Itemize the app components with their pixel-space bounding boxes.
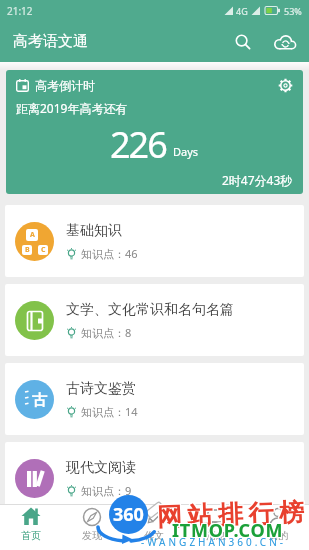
staticText: ITMOP.COM: [171, 519, 283, 544]
button[interactable]: [278, 78, 293, 93]
button[interactable]: 高考倒计时: [6, 70, 303, 194]
staticText: 消息: [206, 529, 226, 542]
button[interactable]: 文学、文化常识和名句名篇: [5, 284, 304, 356]
button[interactable]: 消息: [185, 505, 247, 550]
staticText: B: [25, 245, 30, 255]
staticText: 古诗文鉴赏: [66, 380, 136, 398]
button[interactable]: 现代文阅读: [5, 442, 304, 514]
staticText: 4G: [236, 5, 248, 17]
staticText: 21:12: [7, 4, 33, 18]
staticText: 2时47分43秒: [222, 172, 293, 188]
staticText: 知识点：8: [81, 325, 132, 340]
staticText: 360: [113, 502, 144, 527]
staticText: 距离2019年高考还有: [16, 100, 128, 116]
button[interactable]: 首页: [0, 505, 61, 550]
staticText: 我的: [268, 529, 288, 542]
staticText: C: [41, 245, 46, 255]
staticText: ITMOP.COM: [171, 518, 283, 543]
staticText: 226: [110, 120, 166, 169]
button[interactable]: 作文: [123, 505, 185, 550]
staticText: 发现: [82, 529, 102, 542]
staticText: 网站排行榜: [156, 497, 309, 534]
button[interactable]: [273, 33, 298, 51]
staticText: 网站排行榜: [156, 496, 309, 533]
staticText: 古: [32, 391, 47, 410]
staticText: ITMOP.COM: [173, 519, 285, 544]
staticText: ITMOP.COM: [172, 517, 284, 542]
staticText: 网站排行榜: [157, 495, 309, 532]
staticText: 网站排行榜: [157, 497, 309, 534]
staticText: 知识点：9: [81, 483, 132, 498]
staticText: Days: [173, 144, 199, 159]
staticText: 知识点：46: [81, 246, 138, 261]
staticText: 网站排行榜: [155, 496, 309, 533]
staticText: 高考语文通: [13, 32, 88, 51]
button[interactable]: 发现: [61, 505, 123, 550]
staticText: ITMOP.COM: [173, 518, 285, 543]
staticText: 文学、文化常识和名句名篇: [66, 301, 234, 319]
button[interactable]: A: [5, 205, 304, 277]
staticText: 高考倒计时: [35, 78, 95, 93]
staticText: 作文: [144, 529, 164, 542]
staticText: 网站排行榜: [155, 497, 309, 534]
staticText: 基础知识: [66, 222, 122, 240]
button[interactable]: 古: [5, 363, 304, 435]
staticText: ITMOP.COM: [173, 517, 285, 542]
staticText: 网站排行榜: [156, 495, 309, 532]
staticText: 首页: [21, 529, 41, 542]
staticText: 53%: [284, 5, 302, 17]
staticText: A: [30, 230, 35, 240]
staticText: 网站排行榜: [155, 495, 309, 532]
staticText: 现代文阅读: [66, 459, 136, 477]
staticText: -WANGZHAN360.CN-: [141, 535, 286, 549]
staticText: ITMOP.COM: [172, 519, 284, 544]
staticText: 知识点：14: [81, 404, 138, 419]
staticText: ITMOP.COM: [171, 517, 283, 542]
button[interactable]: [235, 34, 251, 50]
staticText: ITMOP.COM: [172, 518, 284, 543]
staticText: 网站排行榜: [157, 496, 309, 533]
button[interactable]: 我的: [247, 505, 309, 550]
